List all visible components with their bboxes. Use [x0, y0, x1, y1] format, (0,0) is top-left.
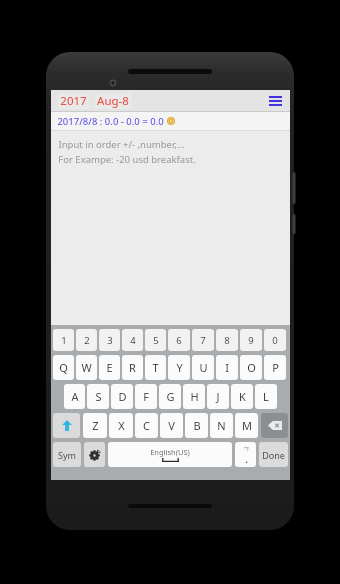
button[interactable]: K: [231, 384, 253, 409]
staticText: .: [245, 453, 248, 465]
staticText: O: [247, 360, 256, 375]
button[interactable]: A: [64, 384, 85, 409]
staticText: V: [168, 418, 175, 433]
staticText: C: [143, 418, 150, 433]
staticText: 2017/8/8 : 0.0 - 0.0 = 0.0: [57, 115, 164, 128]
staticText: H: [190, 389, 199, 404]
button[interactable]: 9: [240, 329, 262, 351]
button[interactable]: M: [235, 413, 258, 438]
button[interactable]: D: [111, 384, 133, 409]
button[interactable]: Aug-8: [95, 93, 131, 109]
staticText: J: [216, 389, 220, 404]
staticText: K: [239, 389, 246, 404]
staticText: R: [129, 360, 136, 375]
staticText: X: [118, 418, 125, 433]
button[interactable]: J: [207, 384, 229, 409]
button[interactable]: X: [109, 413, 133, 438]
button[interactable]: I: [216, 355, 238, 380]
button[interactable]: G: [159, 384, 181, 409]
staticText: N: [217, 418, 226, 433]
button[interactable]: 2: [76, 329, 97, 351]
button[interactable]: S: [87, 384, 109, 409]
staticText: "?: [243, 445, 249, 453]
staticText: P: [272, 360, 279, 375]
button[interactable]: E: [99, 355, 120, 380]
staticText: 2: [84, 334, 90, 347]
button[interactable]: T: [145, 355, 166, 380]
staticText: 1: [61, 334, 67, 347]
button[interactable]: 3: [99, 329, 120, 351]
staticText: G: [166, 389, 175, 404]
button[interactable]: Shift: [53, 413, 80, 438]
staticText: 0: [272, 334, 278, 347]
staticText: 5: [153, 334, 159, 347]
button[interactable]: C: [135, 413, 158, 438]
staticText: B: [193, 418, 201, 433]
button[interactable]: H: [183, 384, 205, 409]
button[interactable]: "?: [235, 442, 256, 467]
button[interactable]: Input in order +/- ,number,...: [51, 131, 290, 325]
staticText: F: [143, 389, 149, 404]
staticText: E: [106, 360, 113, 375]
staticText: Input in order +/- ,number,...: [58, 138, 185, 151]
button[interactable]: 4: [122, 329, 143, 351]
staticText: 8: [224, 334, 230, 347]
staticText: D: [118, 389, 127, 404]
button[interactable]: N: [210, 413, 233, 438]
staticText: 6: [176, 334, 182, 347]
button[interactable]: V: [160, 413, 183, 438]
button[interactable]: L: [255, 384, 277, 409]
staticText: Q: [59, 360, 68, 375]
button[interactable]: P: [264, 355, 286, 380]
staticText: L: [263, 389, 269, 404]
button[interactable]: Z: [83, 413, 107, 438]
staticText: Aug-8: [97, 93, 129, 109]
staticText: I: [225, 360, 229, 375]
button[interactable]: 5: [145, 329, 166, 351]
button[interactable]: 2017: [58, 93, 89, 109]
staticText: 4: [130, 334, 136, 347]
button[interactable]: Y: [168, 355, 190, 380]
button[interactable]: U: [192, 355, 214, 380]
button[interactable]: 8: [216, 329, 238, 351]
button[interactable]: Menu: [265, 90, 286, 111]
staticText: Done: [262, 449, 285, 461]
staticText: Z: [92, 418, 99, 433]
button[interactable]: 1: [53, 329, 74, 351]
button[interactable]: 0: [264, 329, 286, 351]
button[interactable]: English(US): [108, 442, 232, 467]
button[interactable]: 7: [192, 329, 214, 351]
button[interactable]: B: [185, 413, 208, 438]
button[interactable]: O: [240, 355, 262, 380]
button[interactable]: 6: [168, 329, 190, 351]
staticText: 2017: [60, 93, 87, 109]
staticText: Sym: [58, 449, 76, 461]
button[interactable]: W: [76, 355, 97, 380]
staticText: 9: [248, 334, 254, 347]
staticText: U: [199, 360, 208, 375]
staticText: W: [81, 360, 92, 375]
button[interactable]: Sym: [53, 442, 81, 467]
button[interactable]: F: [135, 384, 157, 409]
staticText: A: [71, 389, 79, 404]
staticText: English(US): [150, 447, 190, 457]
staticText: 7: [200, 334, 206, 347]
staticText: Y: [176, 360, 183, 375]
staticText: T: [152, 360, 159, 375]
button[interactable]: Done: [259, 442, 288, 467]
staticText: For Exampe: -20 usd breakfast.: [58, 153, 196, 166]
button[interactable]: Q: [53, 355, 74, 380]
staticText: 3: [107, 334, 113, 347]
button[interactable]: Backspace: [261, 413, 288, 438]
button[interactable]: R: [122, 355, 143, 380]
staticText: M: [242, 418, 252, 433]
staticText: S: [95, 389, 102, 404]
button[interactable]: Settings: [84, 442, 105, 467]
